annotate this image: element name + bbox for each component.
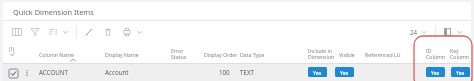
button[interactable]: 24 — [410, 25, 430, 39]
button[interactable]: Row actions — [23, 67, 31, 79]
button[interactable]: Yes — [335, 67, 354, 77]
staticText: 100 — [219, 68, 230, 76]
staticText: Yes — [431, 69, 440, 76]
staticText: Column Name — [39, 51, 74, 58]
button[interactable]: Filter — [28, 25, 42, 39]
staticText: Yes — [340, 69, 349, 76]
staticText: Key Column — [450, 47, 470, 61]
button[interactable]: Grid view — [10, 25, 24, 39]
staticText: Yes — [456, 69, 465, 76]
button[interactable]: Sort — [46, 25, 60, 39]
button[interactable]: Select row — [3, 64, 471, 81]
button[interactable]: Edit — [82, 25, 96, 39]
staticText: Quick Dimension Items — [13, 7, 94, 17]
staticText: Account — [105, 68, 129, 76]
staticText: ACCOUNT — [39, 68, 68, 76]
staticText: Error Status — [171, 47, 187, 61]
staticText: Display Order — [204, 51, 238, 58]
staticText: Visible — [339, 51, 355, 58]
staticText: (1) — [9, 46, 15, 52]
staticText: Referenced LU — [365, 51, 401, 58]
button[interactable]: Yes — [426, 67, 445, 77]
staticText: Include in Dimension — [308, 47, 335, 61]
staticText: Data Type — [240, 51, 265, 58]
staticText: ID Column — [426, 47, 446, 61]
button[interactable]: Yes — [451, 67, 470, 77]
button[interactable]: Sort options — [60, 25, 71, 39]
staticText: 24 — [410, 28, 418, 36]
staticText: Yes — [313, 69, 322, 76]
button[interactable]: Choose columns — [441, 25, 465, 39]
button[interactable]: Delete — [101, 25, 115, 39]
staticText: Display Name — [105, 51, 139, 58]
button[interactable]: Print — [120, 25, 134, 39]
staticText: TEXT — [240, 68, 254, 76]
button[interactable]: Select all — [9, 46, 23, 60]
button[interactable]: Yes — [308, 67, 327, 77]
button[interactable]: Select row — [9, 69, 18, 78]
button[interactable]: Print options — [134, 25, 145, 39]
